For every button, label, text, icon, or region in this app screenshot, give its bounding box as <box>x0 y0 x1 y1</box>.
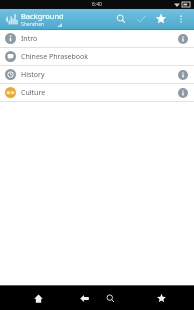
button[interactable]: Info <box>176 68 189 81</box>
button[interactable]: Intro <box>0 30 194 48</box>
staticText: Background <box>21 11 64 21</box>
staticText: Intro <box>21 34 38 44</box>
button[interactable]: Back <box>75 289 93 307</box>
button[interactable]: History <box>0 66 194 84</box>
staticText: Chinese Phrasebook <box>21 52 89 62</box>
staticText: 6:40 <box>92 1 102 8</box>
staticText: Shenzhen <box>21 21 45 28</box>
button[interactable]: Home <box>29 289 47 307</box>
button[interactable]: Info <box>176 32 189 45</box>
button[interactable]: Favorites <box>152 289 170 307</box>
staticText: History <box>21 70 45 80</box>
button[interactable]: Up <box>3 12 18 27</box>
button[interactable]: Edit <box>131 9 151 29</box>
button[interactable]: Chinese Phrasebook <box>0 48 194 66</box>
button[interactable]: Favorite <box>151 9 171 29</box>
button[interactable]: More options <box>171 9 191 29</box>
button[interactable]: Background <box>21 11 111 28</box>
button[interactable]: Info <box>176 86 189 99</box>
staticText: Culture <box>21 88 46 98</box>
button[interactable]: Culture <box>0 84 194 102</box>
button[interactable]: Search <box>111 9 131 29</box>
button[interactable]: Search <box>101 289 119 307</box>
